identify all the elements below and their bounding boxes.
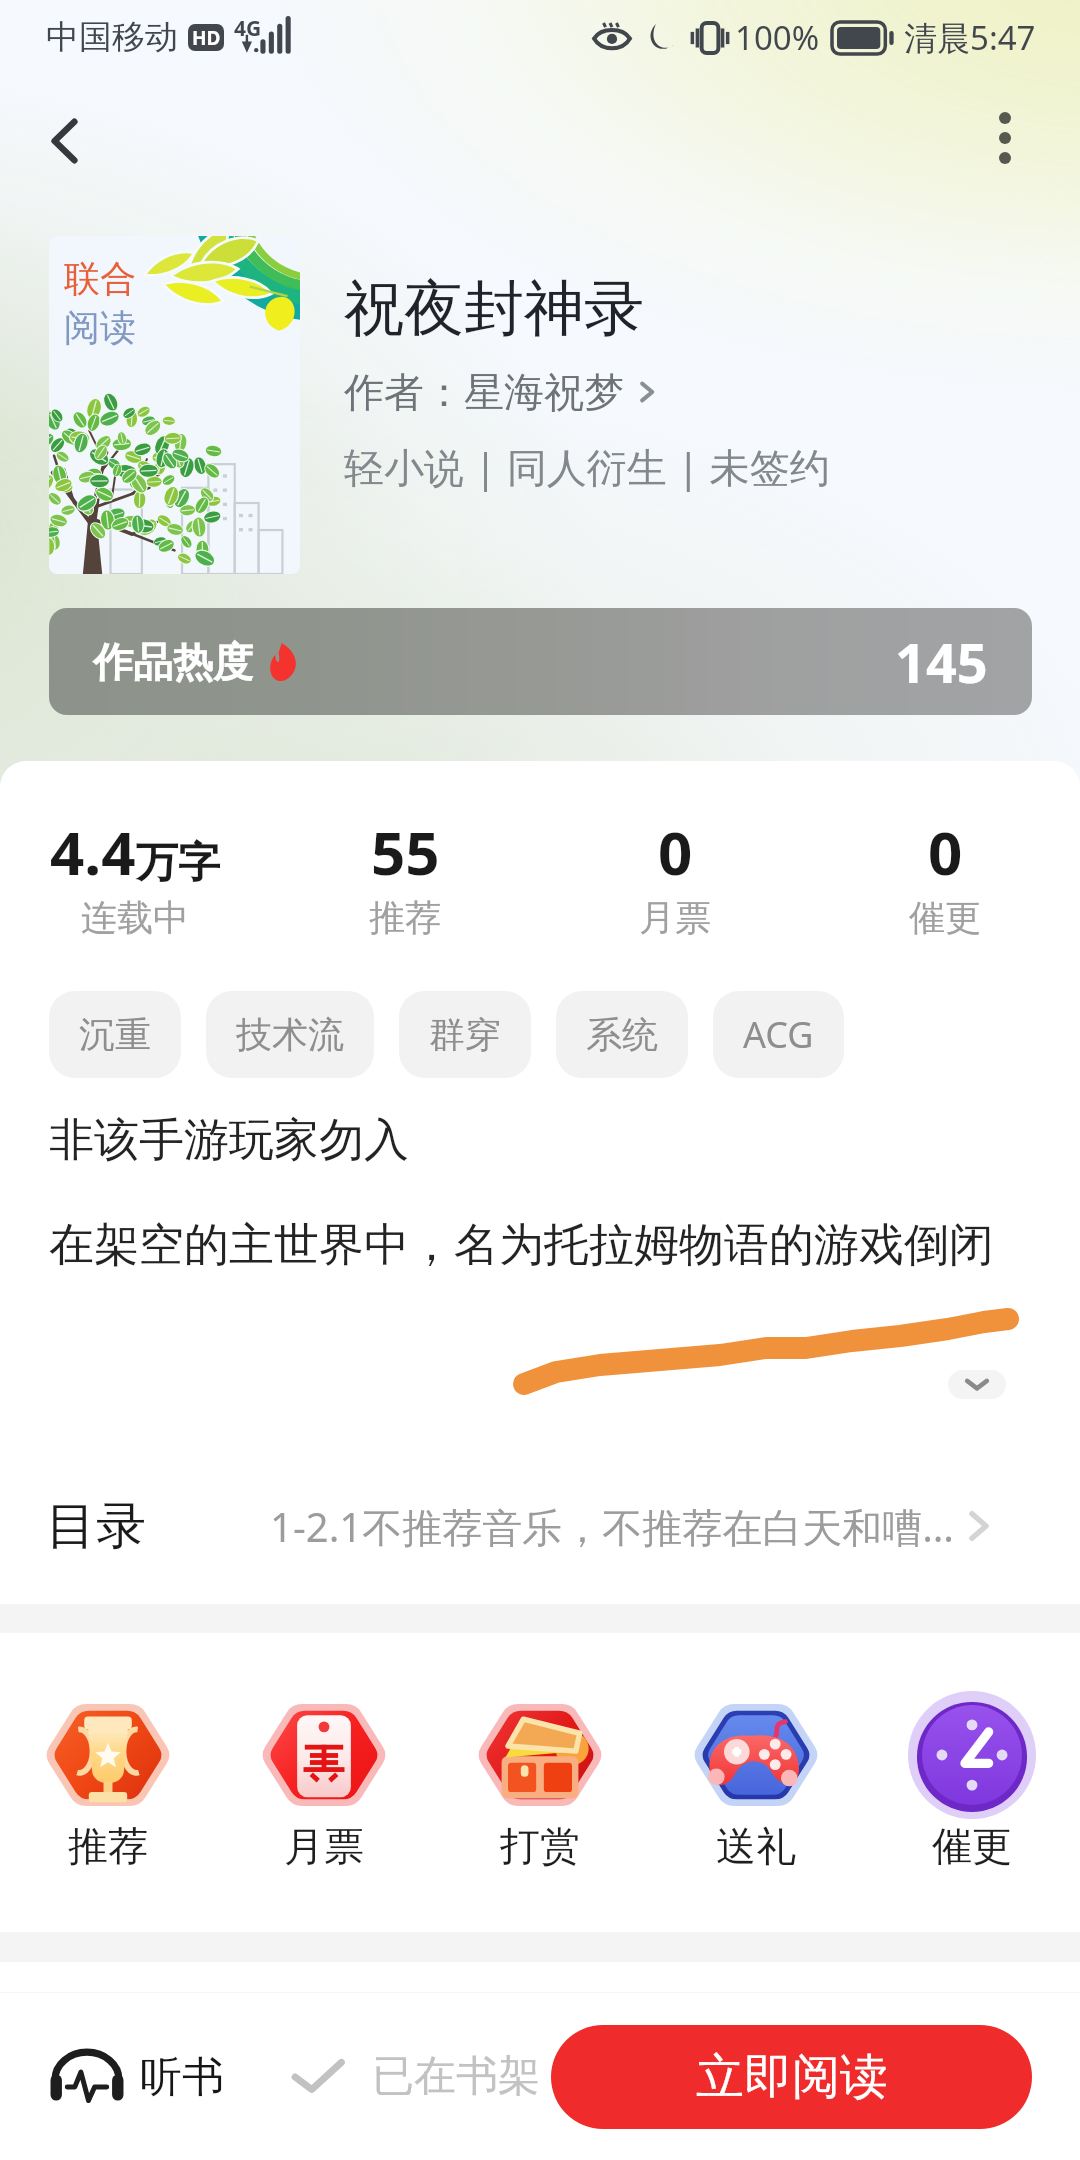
- staticText: 4.4: [50, 811, 136, 893]
- staticText: 0: [658, 811, 693, 893]
- staticText: 1-2.1不推荐音乐，不推荐在白天和嘈…: [270, 1499, 954, 1554]
- staticText: 中国移动: [46, 16, 178, 58]
- staticText: 催更: [909, 895, 981, 940]
- staticText: 月票: [639, 895, 711, 940]
- button[interactable]: 月票: [216, 1695, 432, 1871]
- staticText: 联合: [64, 256, 136, 301]
- button[interactable]: 0: [540, 811, 810, 940]
- button[interactable]: 系统: [556, 991, 688, 1078]
- staticText: 目录: [46, 1495, 146, 1558]
- staticText: 作品热度: [93, 637, 253, 687]
- button[interactable]: 立即阅读: [551, 2025, 1032, 2129]
- staticText: 清晨5:47: [904, 15, 1036, 60]
- button[interactable]: Back: [22, 98, 108, 184]
- button[interactable]: 送礼: [648, 1695, 864, 1871]
- button[interactable]: 推荐: [0, 1695, 216, 1871]
- staticText: 4G: [234, 14, 262, 43]
- staticText: 万字: [136, 837, 220, 890]
- button[interactable]: 目录: [0, 1471, 1080, 1581]
- button[interactable]: More options: [962, 96, 1048, 182]
- staticText: ACG: [743, 1010, 814, 1059]
- staticText: 祝夜封神录: [344, 271, 644, 347]
- button[interactable]: 沉重: [49, 991, 181, 1078]
- staticText: 已在书架: [372, 2050, 540, 2103]
- staticText: 非该手游玩家勿入: [49, 1112, 409, 1169]
- staticText: 听书: [140, 2051, 224, 2104]
- staticText: 0: [928, 811, 963, 893]
- staticText: 作者：星海祝梦: [344, 367, 624, 417]
- staticText: 推荐: [369, 895, 441, 940]
- staticText: 系统: [586, 1012, 658, 1057]
- staticText: 推荐: [68, 1821, 148, 1871]
- button[interactable]: Book cover: [49, 236, 300, 574]
- staticText: 145: [895, 625, 988, 699]
- staticText: 技术流: [236, 1012, 344, 1057]
- staticText: 送礼: [716, 1821, 796, 1871]
- staticText: 100%: [735, 15, 820, 60]
- staticText: 在架空的主世界中，名为托拉姆物语的游戏倒闭: [49, 1217, 994, 1274]
- button[interactable]: 55: [270, 811, 540, 940]
- staticText: 打赏: [500, 1821, 580, 1871]
- staticText: 立即阅读: [696, 2047, 888, 2107]
- button[interactable]: ACG: [713, 991, 844, 1078]
- staticText: 群穿: [429, 1012, 501, 1057]
- button[interactable]: 作品热度: [49, 608, 1032, 715]
- staticText: 催更: [932, 1821, 1012, 1871]
- staticText: 轻小说 | 同人衍生 | 未签约: [344, 439, 830, 494]
- staticText: 55: [371, 811, 440, 893]
- button[interactable]: 群穿: [399, 991, 531, 1078]
- button[interactable]: 技术流: [206, 991, 374, 1078]
- staticText: 沉重: [79, 1012, 151, 1057]
- button[interactable]: 听书: [49, 2046, 224, 2108]
- button[interactable]: 催更: [864, 1695, 1080, 1871]
- staticText: HD: [192, 25, 221, 51]
- button[interactable]: 作者：星海祝梦: [344, 367, 658, 417]
- staticText: 连载中: [81, 895, 189, 940]
- button[interactable]: Expand description: [948, 1370, 1006, 1399]
- staticText: 阅读: [64, 305, 136, 350]
- staticText: 月票: [284, 1821, 364, 1871]
- button[interactable]: 0: [810, 811, 1080, 940]
- button[interactable]: 打赏: [432, 1695, 648, 1871]
- button[interactable]: 4.4: [0, 811, 270, 940]
- button[interactable]: 已在书架: [292, 2050, 540, 2103]
